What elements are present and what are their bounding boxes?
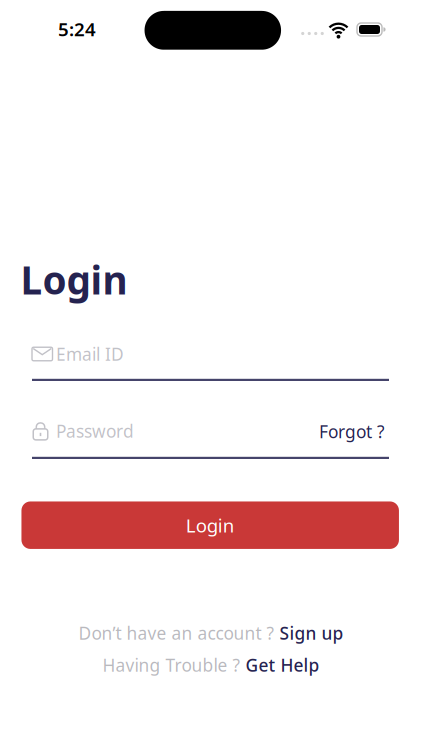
button[interactable]: Sign up — [279, 621, 343, 644]
staticText: Login — [20, 254, 127, 305]
button[interactable]: Password — [32, 417, 389, 465]
button[interactable]: Get Help — [245, 653, 319, 676]
button[interactable]: Login — [21, 501, 399, 549]
staticText: Login — [186, 513, 235, 538]
button[interactable]: Forgot ? — [285, 416, 385, 446]
staticText: Forgot ? — [319, 420, 385, 443]
staticText: Don’t have an account ? — [78, 621, 274, 644]
staticText: Get Help — [245, 653, 319, 676]
staticText: Email ID — [56, 342, 124, 365]
button[interactable]: Email ID — [32, 340, 389, 388]
staticText: 5:24 — [58, 17, 96, 41]
staticText: Having Trouble ? — [102, 653, 240, 676]
staticText: Sign up — [279, 621, 343, 644]
staticText: Password — [56, 419, 134, 442]
